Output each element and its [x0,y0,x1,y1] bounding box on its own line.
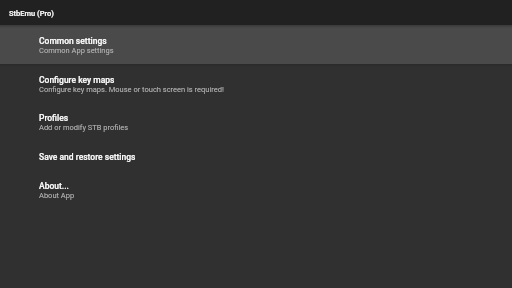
staticText: StbEmu (Pro) [9,9,54,18]
button[interactable]: Save and restore settings [0,141,512,170]
button[interactable]: Common settings [0,25,512,64]
staticText: Configure key maps [39,75,115,85]
staticText: Save and restore settings [39,152,136,162]
staticText: Common App settings [39,46,114,55]
staticText: Profiles [39,113,69,123]
button[interactable]: Profiles [0,102,512,141]
button[interactable]: Configure key maps [0,64,512,103]
staticText: About App [39,191,75,200]
staticText: Configure key maps. Mouse or touch scree… [39,85,224,94]
staticText: Common settings [39,36,107,46]
staticText: About... [39,181,69,191]
staticText: Add or modify STB profiles [39,123,129,132]
button[interactable]: About... [0,170,512,209]
